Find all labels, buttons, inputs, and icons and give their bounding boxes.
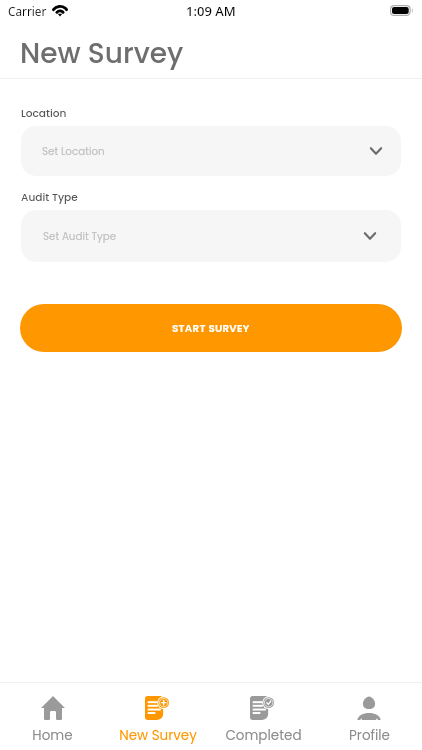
- staticText: Profile: [349, 726, 390, 745]
- staticText: Set Audit Type: [43, 229, 117, 243]
- staticText: Completed: [225, 726, 302, 745]
- button[interactable]: START SURVEY: [20, 304, 402, 352]
- staticText: 1:09 AM: [186, 2, 236, 20]
- staticText: Home: [32, 726, 73, 745]
- button[interactable]: Set Location: [21, 126, 401, 176]
- button[interactable]: New Survey: [105, 683, 210, 750]
- button[interactable]: Home: [0, 683, 105, 750]
- button[interactable]: Completed: [210, 683, 316, 750]
- button[interactable]: Set Audit Type: [21, 210, 401, 262]
- staticText: START SURVEY: [172, 321, 250, 335]
- staticText: New Survey: [119, 726, 197, 745]
- staticText: Audit Type: [21, 190, 78, 205]
- button[interactable]: Profile: [316, 683, 422, 750]
- staticText: New Survey: [20, 34, 184, 73]
- staticText: Location: [21, 106, 67, 121]
- staticText: Set Location: [42, 144, 105, 158]
- staticText: Carrier: [8, 3, 47, 19]
